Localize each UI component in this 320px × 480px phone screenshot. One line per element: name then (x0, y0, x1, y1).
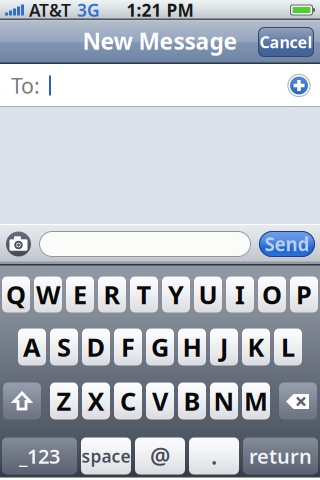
staticText: M (244, 384, 268, 418)
button[interactable]: A (18, 328, 46, 365)
staticText: 1:21 PM (126, 0, 193, 21)
staticText: Y (168, 278, 184, 311)
staticText: N (213, 384, 234, 418)
staticText: L (281, 330, 295, 364)
staticText: S (57, 330, 71, 364)
button[interactable]: Delete (279, 382, 317, 419)
staticText: F (121, 330, 135, 364)
staticText: space (81, 444, 130, 467)
button[interactable]: Z (50, 382, 78, 419)
staticText: T (136, 278, 151, 311)
button[interactable]: H (178, 328, 206, 365)
button[interactable]: Q (2, 276, 30, 312)
button[interactable]: space (81, 437, 131, 474)
staticText: E (73, 278, 87, 311)
staticText: P (296, 278, 312, 311)
button[interactable]: Cancel (258, 27, 314, 57)
staticText: 3G (77, 0, 100, 21)
button[interactable]: _123 (2, 437, 77, 474)
button[interactable]: B (178, 382, 206, 419)
staticText: Send (264, 232, 309, 256)
button[interactable]: X (82, 382, 110, 419)
staticText: K (247, 330, 264, 364)
staticText: AT&T (29, 0, 71, 21)
staticText: R (103, 278, 120, 311)
staticText: C (120, 384, 136, 418)
staticText: D (86, 330, 105, 364)
staticText: X (87, 384, 104, 418)
button[interactable]: F (114, 328, 142, 365)
button[interactable]: Camera (6, 231, 31, 256)
button[interactable]: T (130, 276, 158, 312)
button[interactable]: M (242, 382, 270, 419)
staticText: Q (6, 278, 26, 311)
staticText: . (211, 441, 217, 471)
staticText: U (198, 278, 217, 311)
button[interactable]: K (242, 328, 270, 365)
button[interactable]: P (290, 276, 318, 312)
button[interactable]: G (146, 328, 174, 365)
staticText: A (23, 330, 41, 364)
button[interactable]: N (210, 382, 238, 419)
button[interactable]: Shift (3, 382, 41, 419)
staticText: return (249, 443, 312, 469)
button[interactable]: W (34, 276, 62, 312)
staticText: I (235, 278, 245, 311)
staticText: O (262, 278, 282, 311)
button[interactable]: U (194, 276, 222, 312)
button[interactable]: S (50, 328, 78, 365)
staticText: W (36, 278, 60, 311)
staticText: Z (56, 384, 71, 418)
staticText: B (183, 384, 200, 418)
staticText: @ (150, 441, 170, 471)
staticText: _123 (19, 443, 60, 469)
button[interactable]: @ (135, 437, 185, 474)
button[interactable]: R (98, 276, 126, 312)
button[interactable]: L (274, 328, 302, 365)
staticText: V (152, 384, 168, 418)
button[interactable]: Send (259, 231, 315, 257)
button[interactable]: . (189, 437, 239, 474)
staticText: To: (11, 71, 40, 100)
button[interactable]: Y (162, 276, 190, 312)
button[interactable]: I (226, 276, 254, 312)
button[interactable]: O (258, 276, 286, 312)
button[interactable]: E (66, 276, 94, 312)
button[interactable]: D (82, 328, 110, 365)
button[interactable]: J (210, 328, 238, 365)
button[interactable]: return (243, 437, 318, 474)
button[interactable]: Add contact (287, 73, 311, 97)
staticText: H (182, 330, 201, 364)
button[interactable]: C (114, 382, 142, 419)
staticText: J (220, 330, 228, 364)
button[interactable]: V (146, 382, 174, 419)
staticText: G (151, 330, 169, 364)
staticText: New Message (82, 26, 237, 56)
staticText: Cancel (259, 31, 312, 53)
